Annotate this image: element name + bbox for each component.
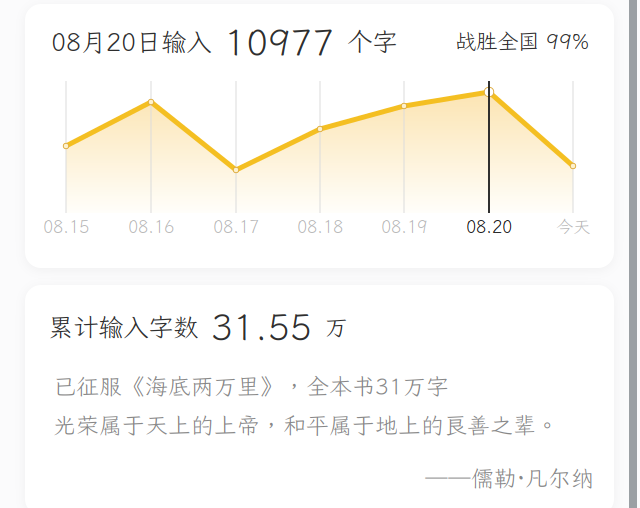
staticText: 31.55	[198, 303, 325, 350]
staticText: 08.19	[381, 215, 427, 238]
staticText: 08.16	[128, 215, 174, 238]
staticText: 10977	[211, 17, 347, 66]
staticText: 个字	[347, 25, 397, 58]
button[interactable]: 累计输入字数	[25, 285, 614, 508]
staticText: 08.15	[43, 215, 89, 238]
staticText: 已征服《海底两万里》，全本书31万字	[53, 371, 449, 401]
staticText: 08月20日输入	[51, 25, 211, 58]
staticText: ——儒勒·凡尔纳	[425, 463, 594, 493]
staticText: 累计输入字数	[48, 310, 198, 343]
staticText: 战胜全国 99%	[455, 27, 589, 55]
staticText: 08.18	[297, 215, 343, 238]
staticText: 光荣属于天上的上帝，和平属于地上的良善之辈。	[53, 410, 559, 440]
staticText: 08.17	[213, 215, 259, 238]
staticText: 万	[325, 312, 348, 342]
staticText: 今天	[556, 215, 590, 238]
staticText: 08.20	[466, 215, 512, 238]
button[interactable]: 08月20日输入	[25, 4, 614, 268]
